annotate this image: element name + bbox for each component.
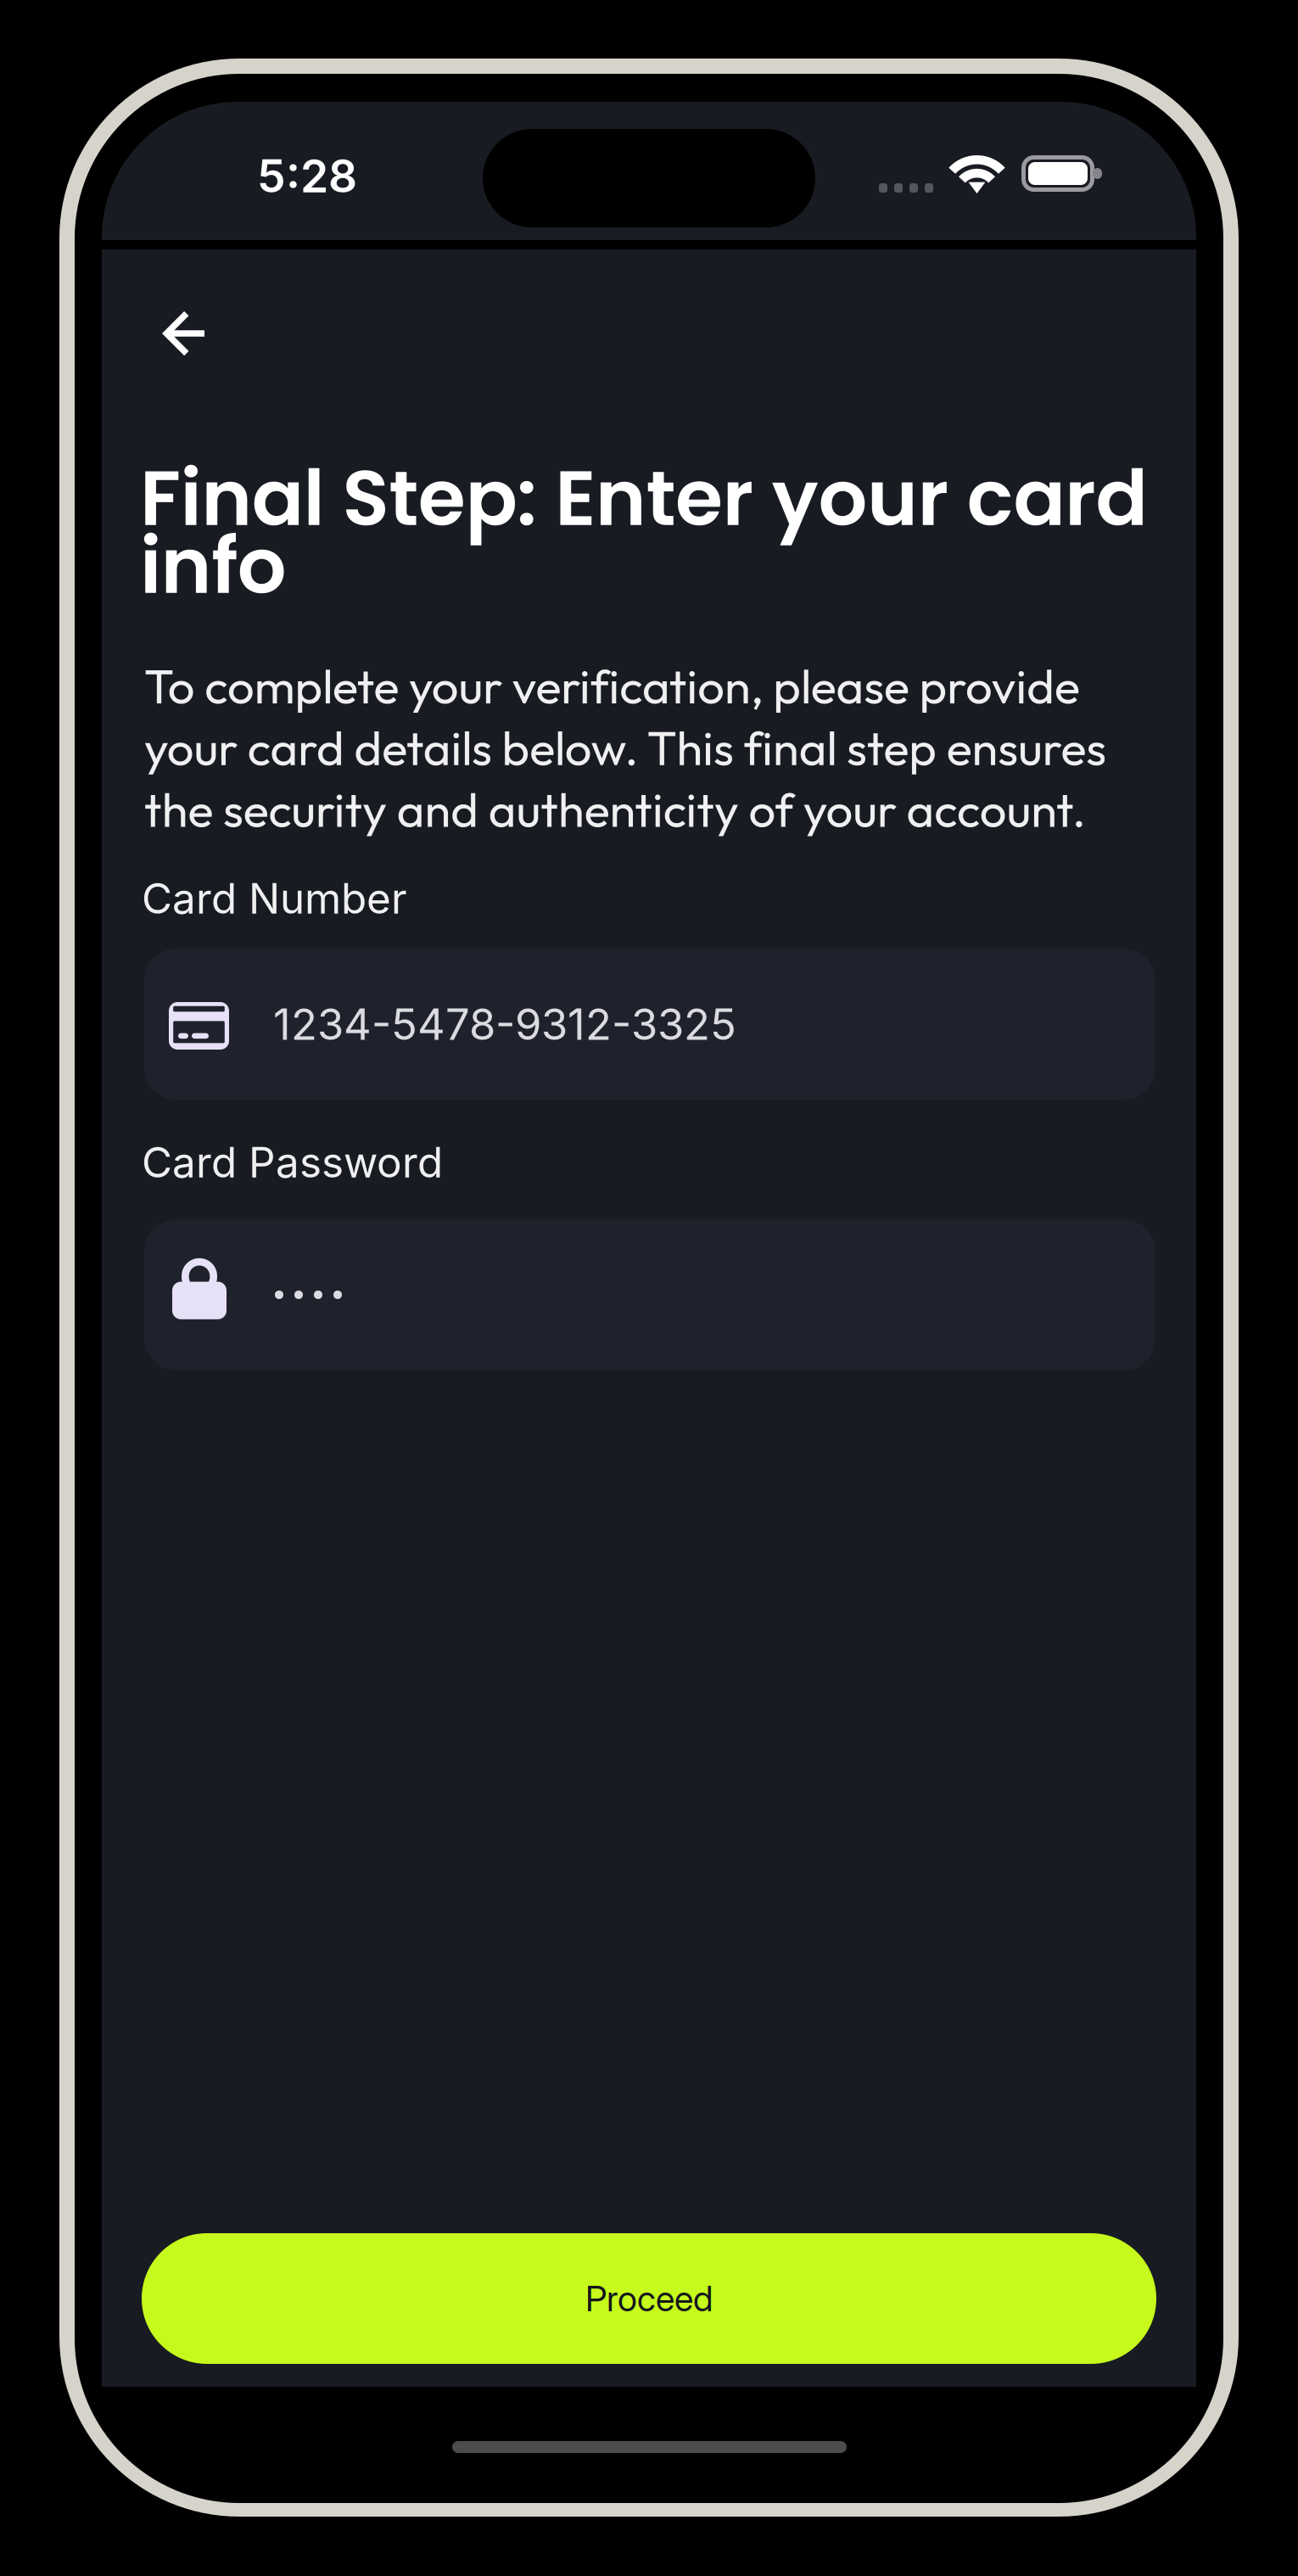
staticText: Final Step: Enter your card info	[140, 464, 1147, 600]
button[interactable]: Proceed	[142, 2233, 1156, 2364]
button[interactable]	[144, 1219, 1155, 1370]
staticText: Card Password	[142, 1137, 443, 1188]
staticText: Proceed	[585, 2277, 713, 2320]
button[interactable]: Back	[134, 284, 232, 383]
staticText: Card Number	[142, 873, 407, 924]
staticText: 5:28	[257, 148, 357, 203]
staticText: 1234-5478-9312-3325	[273, 998, 736, 1050]
button[interactable]: 1234-5478-9312-3325	[144, 949, 1155, 1100]
staticText: To complete your verification, please pr…	[144, 655, 1106, 840]
